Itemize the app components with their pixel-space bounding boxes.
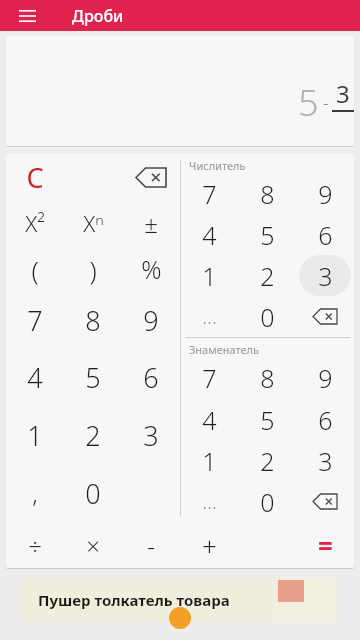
button[interactable]: 1 [6,406,64,464]
staticText: 0 [85,475,101,512]
staticText: 4 [202,403,217,437]
button[interactable]: 4 [181,399,238,440]
button[interactable]: 0 [238,481,296,522]
staticText: 4 [202,218,217,252]
staticText: 5 [260,403,275,437]
staticText: C [26,159,44,196]
staticText: Xⁿ [83,208,104,238]
button[interactable]: 8 [64,292,122,349]
staticText: 3 [318,444,333,478]
button[interactable]: ± [122,200,180,246]
button[interactable]: 6 [122,349,180,406]
button[interactable]: 9 [296,173,354,214]
staticText: 1 [202,444,217,478]
button[interactable]: 5 [238,399,296,440]
staticText: X² [25,208,45,238]
button[interactable]: 5 [238,214,296,255]
button[interactable]: 5 [64,349,122,406]
button[interactable]: 2 [238,255,296,296]
button[interactable]: 0 [64,464,122,522]
button[interactable]: ( [6,246,64,292]
button[interactable]: Backspace [122,154,180,200]
staticText: Числитель [189,158,246,173]
staticText: % [141,252,162,286]
staticText: 9 [318,361,333,395]
button[interactable]: 1 [181,440,238,481]
staticText: 7 [202,361,217,395]
button[interactable]: 8 [238,357,296,399]
staticText: , [32,477,38,510]
button[interactable]: , [6,464,64,522]
button[interactable]: 0 [238,296,296,337]
button[interactable]: ) [64,246,122,292]
staticText: 8 [260,361,275,395]
button[interactable]: + [180,522,238,568]
staticText: 5 [85,359,101,396]
staticText: Знаменатель [189,342,260,357]
button[interactable]: 4 [6,349,64,406]
button[interactable]: 9 [296,357,354,399]
staticText: 0 [260,485,275,519]
button[interactable]: Backspace [296,481,354,522]
staticText: 1 [27,417,43,454]
staticText: × [86,529,100,562]
staticText: 2 [260,259,275,293]
staticText: 0 [260,300,275,334]
staticText: ± [144,207,158,240]
button[interactable]: 4 [181,214,238,255]
button[interactable]: 6 [296,399,354,440]
staticText: + [202,528,217,563]
staticText: 2 [85,417,101,454]
button[interactable]: = [296,522,354,568]
button[interactable]: C [6,154,64,200]
button[interactable]: 9 [122,292,180,349]
staticText: 3 [336,77,350,110]
button[interactable]: 6 [296,214,354,255]
staticText: 3 [318,259,333,293]
button[interactable]: X² [6,200,64,246]
staticText: - [323,91,329,114]
button[interactable]: 2 [238,440,296,481]
staticText: = [318,528,333,563]
staticText: 8 [85,302,101,339]
button[interactable]: 7 [181,173,238,214]
button[interactable]: 2 [64,406,122,464]
button[interactable]: ... [181,296,238,337]
button[interactable]: × [64,522,122,568]
staticText: 8 [260,177,275,211]
button[interactable]: % [122,246,180,292]
staticText: 5 [298,78,319,127]
staticText: ... [202,303,217,330]
button[interactable]: Menu [14,3,40,29]
button[interactable]: 8 [238,173,296,214]
button[interactable]: 7 [181,357,238,399]
button[interactable]: Пушер толкатель товара [22,578,338,622]
staticText: 1 [202,259,217,293]
staticText: ... [202,488,217,515]
button[interactable]: 3 [122,406,180,464]
button[interactable]: ÷ [6,522,64,568]
staticText: 2 [260,444,275,478]
button[interactable]: Backspace [296,296,354,337]
staticText: 6 [318,218,333,252]
button[interactable]: 3 [296,440,354,481]
button[interactable]: Xⁿ [64,200,122,246]
staticText: 4 [27,359,43,396]
staticText: 6 [143,359,159,396]
button[interactable]: 3 [296,255,354,296]
staticText: 9 [143,302,159,339]
staticText: ) [89,252,97,287]
button[interactable]: - [122,522,180,568]
staticText: 7 [27,302,43,339]
button[interactable]: ... [181,481,238,522]
staticText: 3 [143,417,159,454]
staticText: 5 [260,218,275,252]
button[interactable]: 7 [6,292,64,349]
staticText: 6 [318,403,333,437]
staticText: ÷ [28,529,42,562]
staticText: Пушер толкатель товара [38,590,230,610]
button[interactable]: 1 [181,255,238,296]
staticText: 9 [318,177,333,211]
staticText: Дроби [72,5,124,27]
staticText: - [147,529,155,562]
